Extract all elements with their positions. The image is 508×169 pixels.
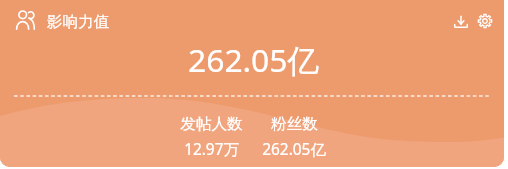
button[interactable]: 粉丝数 — [262, 114, 326, 160]
staticText: 粉丝数 — [271, 114, 318, 134]
staticText: 262.05亿 — [262, 139, 326, 160]
button[interactable]: Settings — [474, 10, 497, 33]
staticText: 发帖人数 — [180, 114, 243, 134]
button[interactable]: Influence — [14, 8, 38, 32]
staticText: 12.97万 — [184, 139, 239, 160]
staticText: 262.05亿 — [188, 38, 320, 81]
button[interactable]: Download — [450, 10, 473, 33]
staticText: 影响力值 — [47, 12, 109, 32]
button[interactable]: 发帖人数 — [180, 114, 243, 160]
